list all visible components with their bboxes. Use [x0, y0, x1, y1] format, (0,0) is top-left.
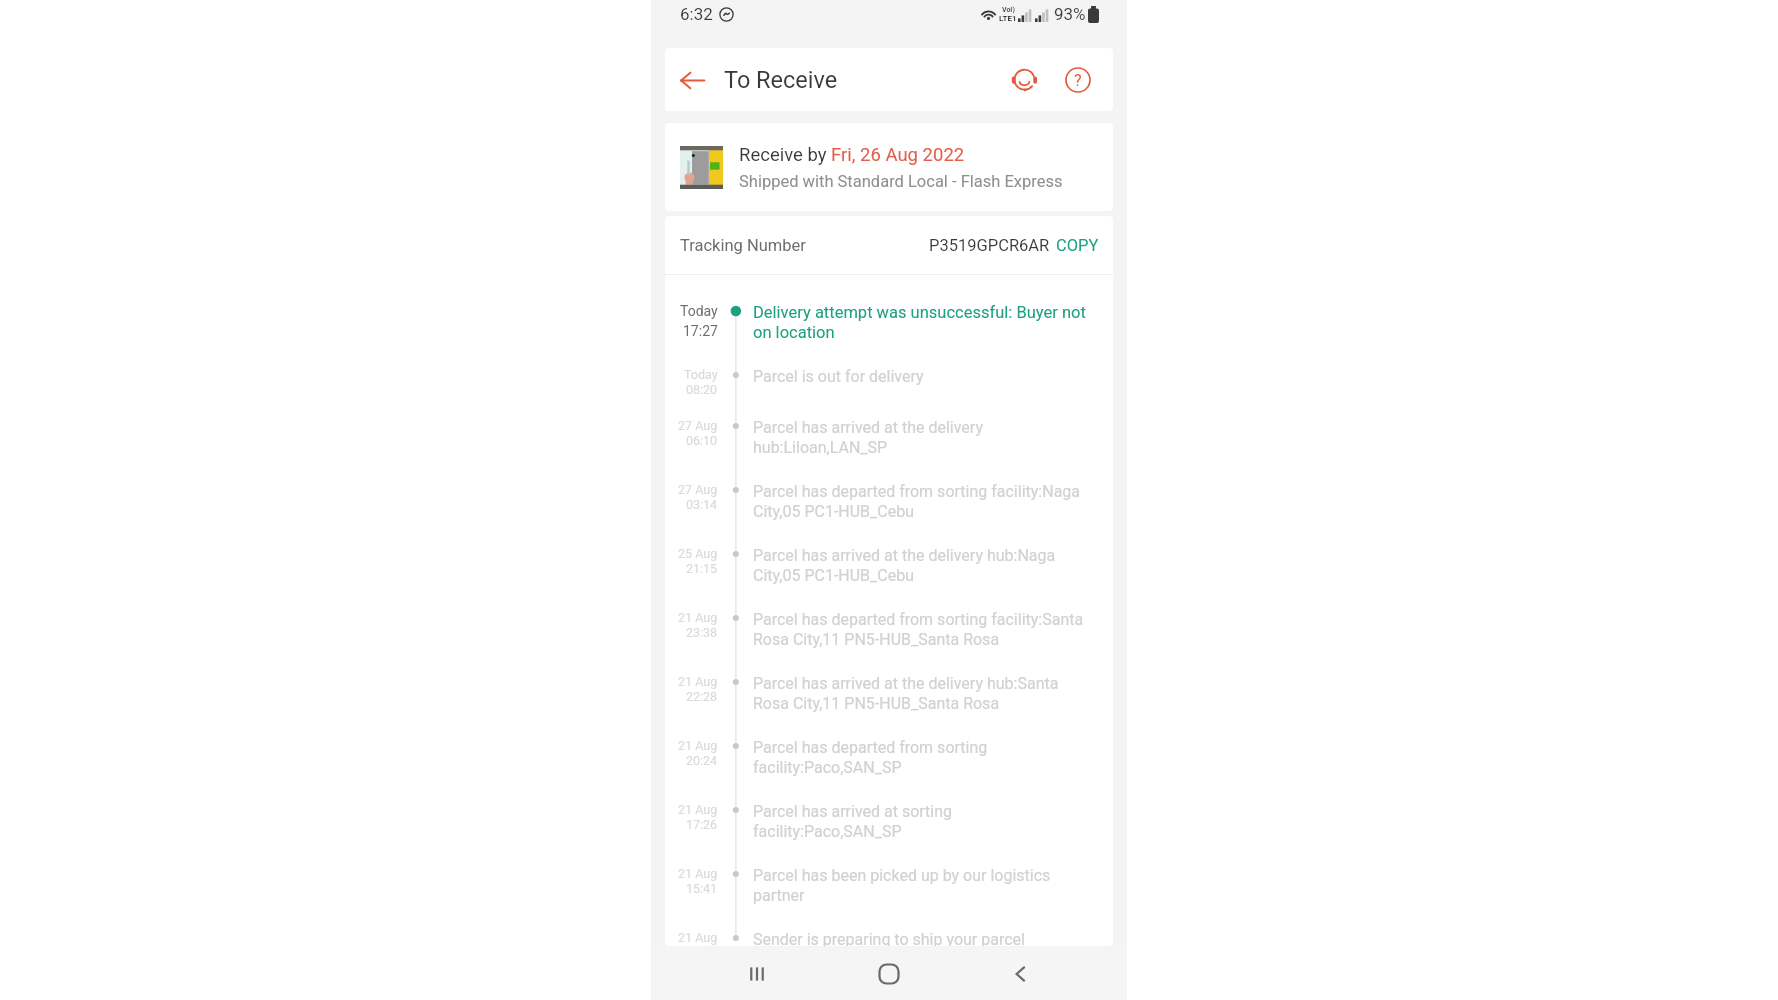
staticText: Parcel has been picked up by our logisti…	[753, 866, 1086, 905]
staticText: 27 Aug	[678, 418, 718, 433]
staticText: 21 Aug	[678, 866, 718, 881]
staticText: ?	[1074, 71, 1082, 90]
staticText: Parcel has arrived at the delivery hub:N…	[753, 546, 1086, 585]
staticText: 21 Aug	[678, 802, 718, 817]
staticText: 21 Aug	[678, 674, 718, 689]
staticText: 08:20	[686, 382, 718, 397]
staticText: 25 Aug	[678, 546, 718, 561]
staticText: Parcel has departed from sorting facilit…	[753, 482, 1086, 521]
staticText: 21 Aug	[678, 610, 718, 625]
button[interactable]: Tracking Number	[665, 216, 1113, 274]
staticText: Parcel has arrived at sorting facility:P…	[753, 802, 1086, 841]
staticText: 21 Aug	[678, 738, 718, 753]
staticText: 17:26	[686, 817, 718, 832]
staticText: Shipped with Standard Local - Flash Expr…	[739, 172, 1063, 191]
button[interactable]: Customer service	[1001, 57, 1047, 103]
staticText: VoI)	[1002, 6, 1015, 14]
button[interactable]: Back	[995, 948, 1047, 1000]
staticText: 23:38	[686, 625, 718, 640]
button[interactable]: Receive by Fri, 26 Aug 2022	[665, 123, 1113, 211]
staticText: COPY	[1056, 236, 1099, 255]
staticText: Parcel has arrived at the delivery hub:L…	[753, 418, 1086, 457]
staticText: 27 Aug	[678, 482, 718, 497]
staticText: 22:28	[686, 689, 718, 704]
staticText: Today	[684, 367, 718, 382]
staticText: 6:32	[680, 4, 713, 24]
staticText: Receive by Fri, 26 Aug 2022	[739, 144, 965, 166]
staticText: LTE1	[999, 14, 1017, 23]
staticText: 20:24	[686, 753, 718, 768]
staticText: 21 Aug	[678, 930, 718, 945]
staticText: 15:41	[686, 881, 718, 896]
staticText: Parcel has departed from sorting facilit…	[753, 610, 1086, 649]
staticText: 03:14	[686, 497, 718, 512]
staticText: Today	[680, 303, 718, 319]
staticText: Parcel has arrived at the delivery hub:S…	[753, 674, 1086, 713]
staticText: Tracking Number	[680, 236, 806, 255]
staticText: To Receive	[724, 66, 838, 94]
staticText: 06:10	[686, 433, 718, 448]
staticText: Parcel has departed from sorting facilit…	[753, 738, 1086, 777]
staticText: Sender is preparing to ship your parcel	[753, 930, 1025, 946]
staticText: Parcel is out for delivery	[753, 367, 924, 386]
staticText: 17:27	[683, 323, 718, 339]
button[interactable]: Recent apps	[731, 948, 783, 1000]
staticText: Delivery attempt was unsuccessful: Buyer…	[753, 303, 1086, 342]
button[interactable]: Home	[863, 948, 915, 1000]
button[interactable]: Back	[665, 53, 719, 107]
staticText: 21:15	[686, 561, 718, 576]
button[interactable]: Help	[1055, 57, 1101, 103]
staticText: P3519GPCR6AR	[929, 236, 1050, 255]
staticText: 93%	[1054, 4, 1086, 24]
